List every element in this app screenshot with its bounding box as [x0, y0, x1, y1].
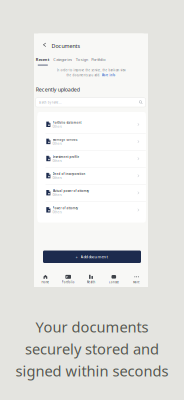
- staticText: Categories: [53, 57, 72, 62]
- staticText: Home: [41, 280, 49, 284]
- staticText: Add document: [81, 254, 109, 259]
- staticText: Others: [52, 125, 61, 128]
- staticText: Portfolio: [91, 57, 105, 62]
- staticText: Others: [52, 176, 61, 180]
- staticText: To sign: [76, 57, 88, 62]
- button[interactable]: Marriage contract: [37, 133, 146, 150]
- button[interactable]: Contact: [102, 272, 125, 286]
- button[interactable]: Recent: [36, 57, 50, 63]
- button[interactable]: More: [125, 272, 148, 286]
- button[interactable]: Investment profile: [37, 150, 146, 167]
- staticText: Mutual power of attorney: [52, 189, 88, 193]
- staticText: Others: [52, 159, 61, 163]
- button[interactable]: Power of attorney: [37, 201, 146, 219]
- staticText: Others: [52, 142, 61, 145]
- staticText: the documents you add.: [66, 73, 100, 77]
- button[interactable]: Wealth: [80, 272, 102, 286]
- button[interactable]: Portfolio statement: [37, 116, 146, 133]
- staticText: Wealth: [86, 280, 95, 284]
- staticText: Others: [52, 193, 61, 197]
- staticText: +: [75, 254, 77, 259]
- staticText: Search by name...: [39, 101, 62, 104]
- staticText: signed within seconds: [15, 361, 168, 380]
- staticText: Investment profile: [52, 155, 79, 159]
- staticText: Recent: [36, 57, 50, 62]
- staticText: Portfolio statement: [52, 121, 81, 124]
- button[interactable]: Portfolio: [57, 272, 80, 286]
- button[interactable]: Deed of incorporation: [37, 167, 146, 184]
- button[interactable]: Home: [34, 272, 57, 286]
- staticText: securely stored and: [25, 339, 159, 358]
- staticText: Others: [52, 210, 61, 214]
- staticText: Power of attorney: [52, 206, 77, 210]
- staticText: More info: [102, 73, 116, 77]
- button[interactable]: Back: [43, 43, 46, 47]
- staticText: Contact: [109, 280, 119, 284]
- staticText: Documents: [51, 42, 80, 49]
- button[interactable]: To sign: [76, 57, 88, 62]
- staticText: In order to improve the service, the ban…: [56, 68, 125, 72]
- staticText: Marriage contract: [52, 138, 77, 141]
- staticText: Deed of incorporation: [52, 172, 85, 176]
- button[interactable]: Categories: [53, 57, 72, 62]
- button[interactable]: Portfolio: [91, 57, 105, 62]
- staticText: More: [133, 280, 140, 284]
- button[interactable]: Mutual power of attorney: [37, 184, 146, 201]
- staticText: Recently uploaded: [36, 86, 80, 93]
- staticText: Your documents: [35, 317, 148, 336]
- staticText: Portfolio: [62, 280, 75, 284]
- button[interactable]: More info: [102, 73, 116, 77]
- button[interactable]: +: [43, 250, 141, 263]
